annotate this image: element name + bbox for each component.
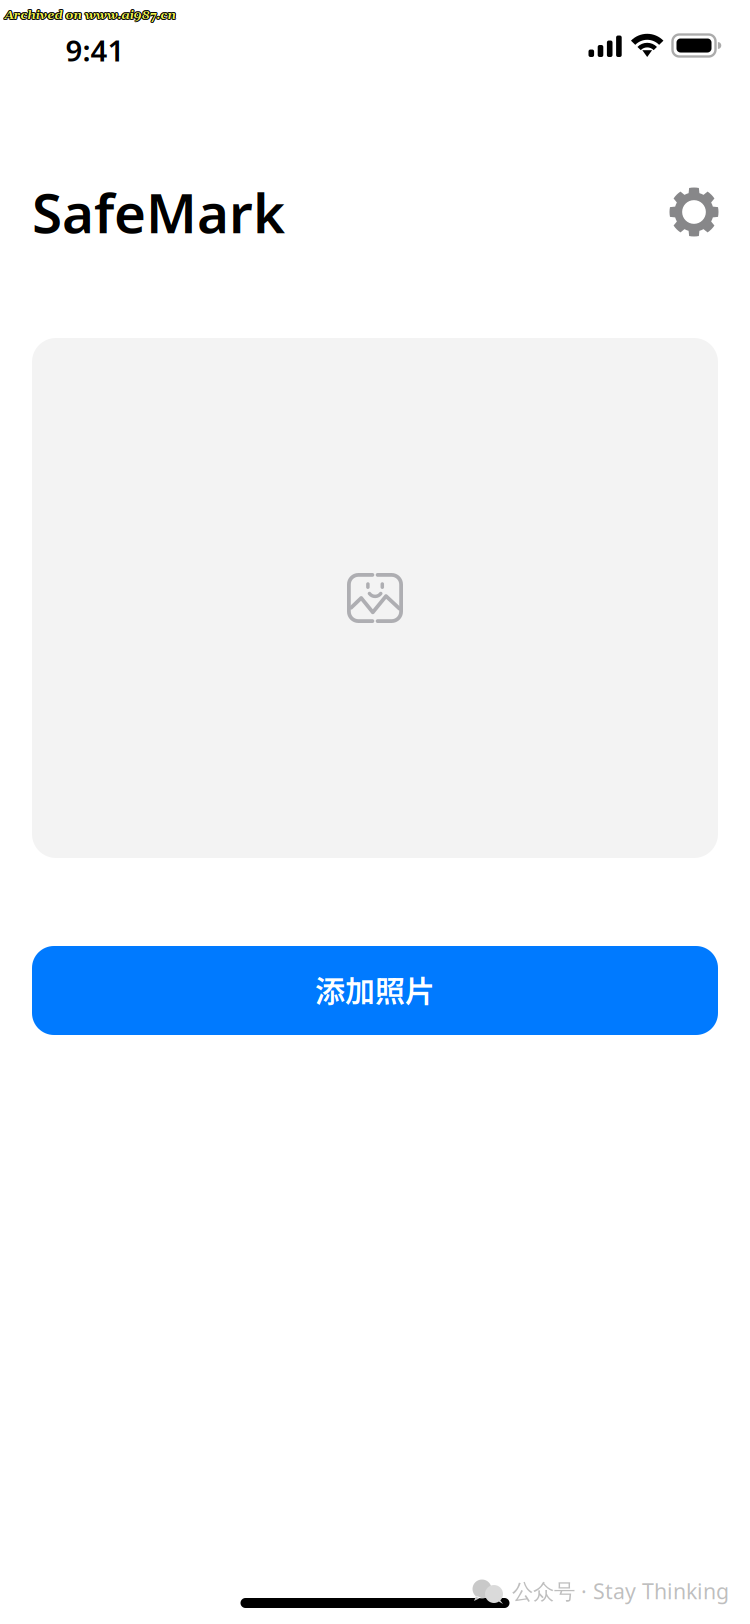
staticText: Archived on www.ai987.cn <box>4 7 175 22</box>
staticText: Archived on www.ai987.cn <box>5 8 176 24</box>
staticText: Archived on www.ai987.cn <box>3 8 174 23</box>
staticText: Archived on www.ai987.cn <box>4 8 175 23</box>
staticText: 添加照片 <box>315 967 435 1011</box>
staticText: Archived on www.ai987.cn <box>4 8 175 24</box>
staticText: SafeMark <box>32 176 285 248</box>
button[interactable]: Settings <box>659 177 729 247</box>
staticText: Archived on www.ai987.cn <box>5 7 176 22</box>
staticText: Archived on www.ai987.cn <box>4 7 175 22</box>
button[interactable]: 添加照片 <box>32 946 718 1035</box>
staticText: 公众号 · Stay Thinking <box>512 1577 729 1605</box>
staticText: Archived on www.ai987.cn <box>4 9 175 24</box>
staticText: 9:41 <box>65 30 124 69</box>
staticText: Archived on www.ai987.cn <box>5 8 176 23</box>
